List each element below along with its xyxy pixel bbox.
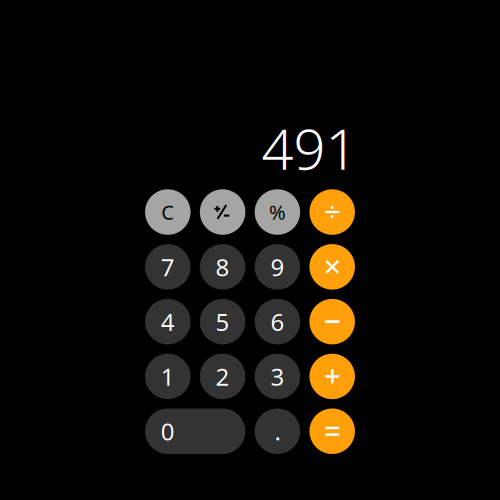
staticText: 6: [270, 306, 284, 338]
button[interactable]: Plus: [309, 354, 355, 399]
button[interactable]: 6: [255, 299, 300, 344]
button[interactable]: 7: [145, 244, 191, 290]
staticText: C: [161, 199, 174, 225]
button[interactable]: 8: [200, 244, 245, 290]
button[interactable]: Divide: [309, 189, 355, 235]
button[interactable]: Minus: [309, 299, 355, 344]
button[interactable]: Equals: [309, 408, 355, 454]
staticText: 7: [161, 251, 175, 283]
staticText: 5: [216, 306, 230, 338]
staticText: %: [269, 199, 286, 225]
staticText: 0: [161, 415, 175, 447]
button[interactable]: %: [255, 189, 300, 235]
button[interactable]: 5: [200, 299, 245, 344]
button[interactable]: 3: [255, 354, 300, 399]
button[interactable]: .: [255, 408, 300, 454]
button[interactable]: Plus minus: [200, 189, 245, 235]
button[interactable]: C: [145, 189, 191, 235]
button[interactable]: 4: [145, 299, 191, 344]
staticText: 3: [270, 360, 284, 392]
button[interactable]: Multiply: [309, 244, 355, 290]
button[interactable]: 1: [145, 354, 191, 399]
staticText: 9: [270, 251, 284, 283]
staticText: 1: [161, 360, 175, 392]
button[interactable]: 0: [145, 408, 245, 454]
button[interactable]: 2: [200, 354, 245, 399]
staticText: .: [274, 415, 280, 447]
button[interactable]: 9: [255, 244, 300, 290]
staticText: 2: [216, 360, 230, 392]
staticText: 491: [261, 111, 357, 185]
staticText: 8: [216, 251, 230, 283]
staticText: 4: [161, 306, 175, 338]
